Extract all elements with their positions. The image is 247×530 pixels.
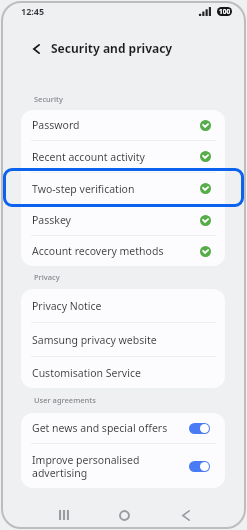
staticText: Security bbox=[34, 94, 63, 104]
button[interactable]: Two-step verification bbox=[21, 173, 225, 204]
button[interactable]: Recents bbox=[49, 500, 79, 528]
staticText: 12:45 bbox=[21, 5, 45, 17]
staticText: Improve personalised advertising bbox=[32, 453, 189, 480]
button[interactable]: Customisation Service bbox=[21, 357, 225, 388]
staticText: Password bbox=[32, 118, 200, 132]
staticText: Two-step verification bbox=[32, 182, 200, 196]
staticText: Samsung privacy website bbox=[32, 333, 211, 347]
staticText: Passkey bbox=[32, 213, 200, 227]
button[interactable]: Account recovery methods bbox=[21, 236, 225, 266]
button[interactable]: Back bbox=[171, 500, 201, 528]
button[interactable]: Password bbox=[21, 110, 225, 140]
staticText: 100 bbox=[219, 7, 231, 16]
button[interactable]: Recent account activity bbox=[21, 141, 225, 172]
button[interactable]: Improve personalised advertising bbox=[21, 444, 225, 488]
staticText: User agreements bbox=[34, 395, 96, 405]
button[interactable]: Passkey bbox=[21, 205, 225, 235]
button[interactable]: Privacy Notice bbox=[21, 289, 225, 322]
button[interactable]: Get news and special offers bbox=[21, 413, 225, 443]
button[interactable]: Home bbox=[109, 500, 139, 528]
staticText: Account recovery methods bbox=[32, 244, 200, 258]
staticText: Customisation Service bbox=[32, 366, 211, 380]
button[interactable]: Samsung privacy website bbox=[21, 323, 225, 356]
button[interactable]: Back bbox=[25, 38, 47, 60]
staticText: Recent account activity bbox=[32, 150, 200, 164]
staticText: Security and privacy bbox=[51, 40, 173, 56]
staticText: Privacy Notice bbox=[32, 299, 211, 313]
staticText: Privacy bbox=[34, 272, 60, 282]
staticText: Get news and special offers bbox=[32, 421, 189, 435]
